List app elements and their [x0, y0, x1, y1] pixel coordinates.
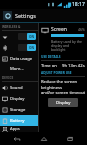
staticText: Data usage	[10, 56, 33, 62]
staticText: 9h 13m 42s	[62, 63, 85, 69]
staticText: ON	[29, 35, 35, 39]
staticText: Apps	[10, 126, 20, 132]
button[interactable]: Settings	[0, 9, 87, 22]
button[interactable]: Home	[35, 132, 53, 145]
button[interactable]: ON	[0, 42, 38, 53]
button[interactable]: ON	[0, 31, 38, 42]
button[interactable]: Back	[8, 132, 26, 145]
staticText: Battery	[10, 118, 25, 124]
button[interactable]: Recents	[61, 132, 79, 145]
staticText: 46%	[78, 27, 85, 32]
button[interactable]: Data usage	[0, 53, 38, 64]
button[interactable]: Display	[0, 93, 38, 104]
staticText: Battery used by the display and backligh…	[51, 39, 85, 52]
staticText: Display	[56, 100, 71, 106]
staticText: WIRELESS & NETWORKS	[2, 25, 38, 29]
staticText: Screen	[51, 26, 67, 33]
staticText: 18:17	[72, 1, 85, 8]
staticText: More...	[10, 66, 24, 72]
staticText: Time on	[41, 63, 57, 69]
button[interactable]: Storage	[0, 104, 38, 115]
staticText: ADJUST POWER USE	[41, 71, 72, 75]
staticText: DEVICE	[2, 76, 14, 80]
staticText: Reduce the screen brightness and/or scre…	[41, 79, 85, 95]
button[interactable]: Apps	[0, 126, 38, 132]
staticText: Settings	[15, 12, 36, 19]
staticText: Display	[10, 96, 25, 102]
staticText: USE DETAILS	[41, 55, 61, 59]
staticText: Storage	[10, 107, 26, 113]
button[interactable]: Sound	[0, 82, 38, 93]
button[interactable]: Battery	[0, 115, 38, 126]
button[interactable]: Time on	[41, 61, 85, 71]
button[interactable]: Display	[48, 98, 78, 107]
staticText: ON	[29, 46, 35, 50]
staticText: Sound	[10, 85, 23, 91]
button[interactable]: More...	[0, 64, 38, 74]
